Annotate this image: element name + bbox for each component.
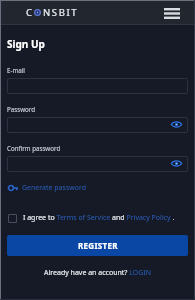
button[interactable]: [7, 78, 188, 94]
button[interactable]: Show password: [170, 157, 182, 169]
button[interactable]: Show password: [170, 118, 182, 130]
button[interactable]: I agree to Terms of Service and Privacy …: [7, 213, 175, 223]
button[interactable]: Already have an account? LOGIN: [44, 268, 151, 278]
staticText: Sign Up: [7, 37, 45, 51]
button[interactable]: Show password: [7, 117, 188, 133]
staticText: Confirm password: [7, 144, 61, 152]
staticText: C: [26, 6, 34, 19]
staticText: Already have an account? LOGIN: [44, 268, 151, 278]
staticText: E-mail: [7, 66, 25, 74]
staticText: Generate password: [22, 183, 87, 193]
staticText: REGISTER: [78, 240, 118, 251]
staticText: NSBIT: [43, 6, 79, 19]
button[interactable]: Generate password: [7, 183, 87, 193]
button[interactable]: REGISTER: [7, 235, 188, 256]
button[interactable]: Menu: [161, 2, 183, 24]
staticText: I agree to Terms of Service and Privacy …: [23, 213, 175, 223]
staticText: Password: [7, 105, 35, 113]
button[interactable]: Show password: [7, 156, 188, 172]
